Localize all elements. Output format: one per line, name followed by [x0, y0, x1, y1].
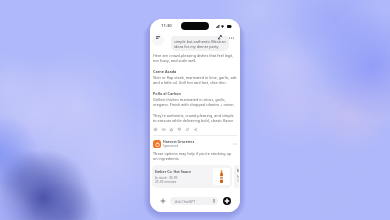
button[interactable]: Next product: [234, 165, 239, 188]
staticText: 15: [237, 179, 239, 183]
staticText: simple but authentic Mexican ideas for m…: [174, 39, 226, 49]
staticText: Pollo al Carbon: [153, 91, 182, 96]
button[interactable]: Harvest Groceries: [153, 140, 161, 148]
staticText: Harvest Groceries: [163, 139, 195, 144]
staticText: They're authentic, crowd-pleasing, and s…: [153, 113, 234, 123]
staticText: Skirt or flap steak, marinated in lime, …: [153, 75, 237, 85]
staticText: Here are crowd-pleasing dishes that feel…: [153, 53, 234, 63]
button[interactable]: Ad options: [232, 141, 237, 146]
staticText: Carne Asada: [153, 69, 177, 74]
button[interactable]: Ask ChatGPT: [170, 197, 218, 205]
staticText: In stock · $5.99: [155, 176, 178, 180]
staticText: Ember Co. Hot Sauce: [155, 169, 191, 174]
staticText: Grilled chicken marinated in citrus, gar…: [153, 97, 235, 107]
staticText: 11:30: [161, 23, 172, 29]
staticText: 25-35 minutes: [155, 180, 177, 184]
button[interactable]: More options: [227, 34, 235, 42]
button[interactable]: Ember Co. Hot Sauce: [152, 165, 232, 188]
staticText: Ask ChatGPT: [175, 199, 196, 204]
button[interactable]: New chat: [216, 33, 224, 41]
button[interactable]: Copy: [153, 127, 158, 132]
staticText: These options may help if you're stockin…: [153, 151, 232, 161]
staticText: Ni: [237, 168, 239, 173]
button[interactable]: simple but authentic Mexican ideas for m…: [171, 35, 229, 51]
button[interactable]: Read aloud: [161, 127, 166, 132]
button[interactable]: Good response: [169, 127, 174, 132]
button[interactable]: Regenerate: [185, 127, 190, 132]
button[interactable]: Add attachment: [159, 197, 166, 204]
button[interactable]: Open sidebar: [152, 34, 164, 46]
staticText: In: [237, 175, 239, 179]
button[interactable]: Share: [193, 127, 198, 132]
button[interactable]: Bad response: [177, 127, 182, 132]
button[interactable]: Voice mode: [223, 197, 231, 205]
staticText: Sponsored: [163, 144, 179, 148]
